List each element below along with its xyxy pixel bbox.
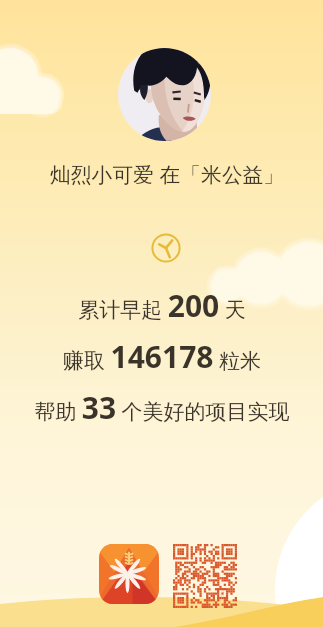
button[interactable]: User avatar — [118, 48, 211, 141]
staticText: 赚取 146178 粒米 — [63, 336, 261, 377]
staticText: 累计早起 200 天 — [78, 285, 246, 326]
button[interactable]: QR code — [173, 544, 237, 608]
staticText: 灿烈小可爱 在「米公益」 — [50, 160, 285, 188]
button[interactable]: App icon — [99, 544, 159, 604]
staticText: 帮助 33 个美好的项目实现 — [34, 387, 290, 428]
